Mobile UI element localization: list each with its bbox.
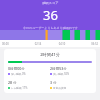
staticText: 36 — [43, 6, 58, 24]
staticText: 3 分 — [50, 80, 57, 85]
button[interactable]: 3 分 — [50, 80, 92, 89]
staticText: 2時間41分 — [8, 52, 92, 58]
button[interactable]: 0時間00分 — [8, 66, 50, 76]
staticText: 目覚め状態 — [53, 86, 67, 89]
button[interactable]: 2時間41分 — [4, 49, 96, 93]
staticText: 睡眠スコア — [42, 1, 59, 5]
staticText: 06:52 — [74, 42, 98, 46]
button[interactable]: 28 分 — [8, 80, 50, 90]
button[interactable]: 2時間53分 — [50, 66, 92, 76]
staticText: 深い睡眠 0% — [11, 72, 26, 76]
button[interactable]: 睡眠スコア — [0, 0, 100, 30]
staticText: 今日のユーザーよりもあまり睡眠的です — [23, 26, 78, 30]
staticText: 00:00 — [2, 42, 26, 46]
staticText: 28 分 — [8, 80, 17, 85]
staticText: 0時間00分 — [8, 66, 25, 71]
staticText: 02:14 — [26, 42, 50, 46]
staticText: 浅い睡眠 92% — [53, 72, 70, 76]
staticText: レム睡眠 17% — [11, 86, 28, 90]
staticText: 2時間53分 — [50, 66, 67, 71]
staticText: 04:10 — [50, 42, 74, 46]
button[interactable]: 00:00 — [0, 30, 100, 47]
